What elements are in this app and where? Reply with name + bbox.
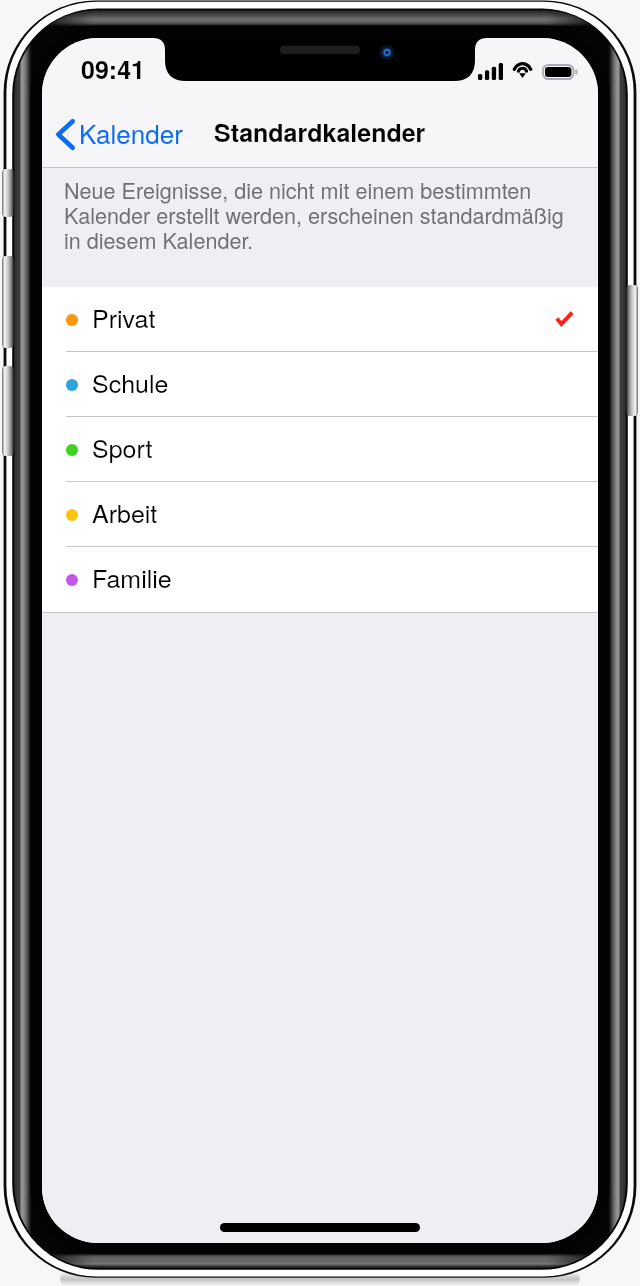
staticText: Neue Ereignisse, die nicht mit einem bes… — [64, 174, 574, 255]
button[interactable]: Schule — [42, 352, 598, 417]
other: Ausgewählt — [555, 311, 574, 326]
staticText: Kalender — [79, 114, 183, 151]
staticText: Standardkalender — [214, 114, 426, 150]
staticText: 09:41 — [81, 51, 145, 87]
staticText: Schule — [92, 364, 169, 400]
button[interactable]: Arbeit — [42, 482, 598, 547]
other: Zurück zu Kalender — [56, 119, 75, 150]
button[interactable]: Zurück zu Kalender — [42, 104, 193, 161]
staticText: Sport — [92, 429, 153, 465]
button[interactable]: Privat — [42, 287, 598, 352]
staticText: Familie — [92, 559, 172, 595]
button[interactable]: Familie — [42, 547, 598, 612]
staticText: Privat — [92, 299, 156, 335]
staticText: Arbeit — [92, 494, 158, 530]
button[interactable]: Sport — [42, 417, 598, 482]
